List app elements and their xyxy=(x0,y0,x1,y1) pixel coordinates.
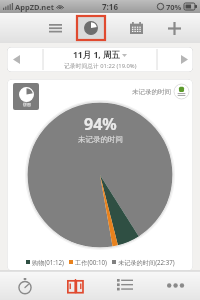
button[interactable]: 11月 1, 周五 xyxy=(25,47,175,72)
button[interactable]: List xyxy=(100,271,150,300)
staticText: 未记录的时间 xyxy=(78,135,123,144)
staticText: 记录时间总计 01:22 (19.0%) xyxy=(64,62,137,70)
button[interactable]: Menu xyxy=(43,17,67,39)
button[interactable]: 工作(00:10) xyxy=(69,258,107,266)
staticText: AppZD.net xyxy=(15,2,54,12)
button[interactable]: Journal xyxy=(50,271,100,300)
button[interactable]: Add xyxy=(161,15,187,41)
staticText: 饼图 xyxy=(23,102,31,107)
button[interactable]: 未记录的时间(22:37) xyxy=(112,258,175,266)
button[interactable]: Legend toggle xyxy=(173,83,190,100)
button[interactable]: Next day xyxy=(175,47,193,72)
staticText: 94% xyxy=(84,113,117,135)
button[interactable]: Previous day xyxy=(7,47,25,72)
button[interactable]: Chart xyxy=(77,16,105,40)
button[interactable]: More xyxy=(150,271,200,300)
button[interactable]: Timer xyxy=(0,271,50,300)
button[interactable]: Calendar xyxy=(124,16,148,40)
staticText: 未记录的时间(22:37) xyxy=(118,258,175,266)
button[interactable]: Chart type xyxy=(13,83,39,110)
staticText: 11月 1, 周五 xyxy=(73,49,120,61)
button[interactable]: 购物(01:12) xyxy=(26,258,64,266)
staticText: 购物(01:12) xyxy=(32,258,64,266)
staticText: 70% xyxy=(166,2,182,12)
staticText: 未记录的时间 xyxy=(132,88,171,96)
staticText: 工作(00:10) xyxy=(75,258,107,266)
staticText: 7:16 xyxy=(102,1,118,12)
